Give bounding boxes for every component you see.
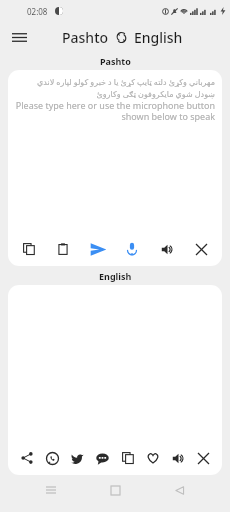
button[interactable]: Copy xyxy=(117,447,139,469)
button[interactable]: Home xyxy=(102,477,128,503)
button[interactable]: Recents xyxy=(38,477,64,503)
staticText: 02:08 xyxy=(27,6,48,17)
button[interactable]: English xyxy=(134,28,183,47)
button[interactable]: Listen xyxy=(167,447,189,469)
staticText: Pashto xyxy=(100,55,131,67)
button[interactable]: Twitter xyxy=(66,447,88,469)
button[interactable]: Listen xyxy=(156,238,178,260)
staticText: English xyxy=(99,270,132,282)
button[interactable]: Translate xyxy=(87,238,109,260)
button[interactable]: Copy xyxy=(18,238,40,260)
button[interactable]: SMS xyxy=(91,447,113,469)
button[interactable]: Pashto xyxy=(62,28,109,47)
button[interactable]: Swap languages xyxy=(114,30,129,45)
staticText: Please type here or use the microphone b… xyxy=(15,99,215,123)
button[interactable]: WhatsApp xyxy=(41,447,63,469)
staticText: Pashto xyxy=(62,28,109,47)
button[interactable]: Speak xyxy=(121,238,143,260)
button[interactable]: Favourite xyxy=(142,447,164,469)
button[interactable]: Back xyxy=(166,477,192,503)
button[interactable]: Clear xyxy=(190,238,212,260)
staticText: English xyxy=(134,28,183,47)
button[interactable]: Menu xyxy=(6,24,32,50)
staticText: مهرباني وکړئ دلته ټایپ کړئ یا د خبرو کول… xyxy=(15,76,215,99)
button[interactable]: Share xyxy=(16,447,38,469)
button[interactable]: Clear xyxy=(192,447,214,469)
button[interactable]: Paste xyxy=(52,238,74,260)
